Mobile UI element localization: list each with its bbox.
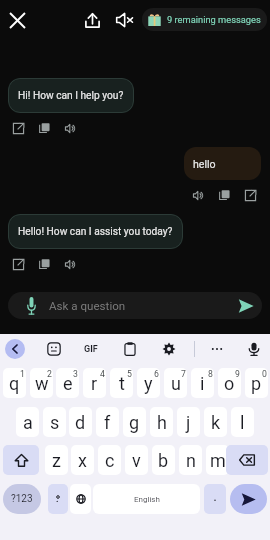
staticText: e: [63, 373, 73, 394]
staticText: a: [23, 412, 33, 433]
button[interactable]: Settings: [158, 338, 180, 360]
staticText: 6: [154, 369, 159, 379]
staticText: hello: [193, 158, 216, 170]
staticText: l: [240, 412, 245, 433]
button[interactable]: Back: [5, 339, 25, 359]
staticText: k: [211, 412, 221, 433]
button[interactable]: Read aloud: [189, 186, 207, 204]
button[interactable]: c: [98, 445, 121, 475]
staticText: s: [50, 412, 60, 433]
staticText: 2: [47, 369, 52, 379]
button[interactable]: Copy: [215, 186, 233, 204]
staticText: n: [186, 450, 196, 471]
button[interactable]: Voice: [243, 338, 265, 360]
staticText: z: [52, 450, 61, 471]
staticText: English: [134, 495, 160, 504]
button[interactable]: a: [16, 407, 39, 437]
button[interactable]: Mute: [113, 9, 135, 31]
button[interactable]: u: [164, 368, 187, 398]
button[interactable]: i: [191, 368, 214, 398]
staticText: p: [251, 373, 262, 394]
button[interactable]: Hi! How can I help you?: [8, 78, 134, 113]
button[interactable]: Open in new: [9, 119, 27, 137]
staticText: v: [132, 450, 141, 471]
staticText: GIF: [84, 344, 98, 355]
staticText: y: [144, 373, 153, 394]
staticText: o: [224, 373, 235, 394]
button[interactable]: Open in new: [241, 186, 259, 204]
button[interactable]: Emoji: [43, 338, 65, 360]
button[interactable]: Open in new: [9, 255, 27, 273]
staticText: w: [35, 373, 49, 394]
button[interactable]: Share: [81, 9, 103, 31]
staticText: Hello! How can I assist you today?: [18, 226, 173, 238]
button[interactable]: Shift: [3, 445, 39, 475]
button[interactable]: Period: [204, 484, 226, 514]
staticText: h: [157, 412, 167, 433]
staticText: b: [158, 450, 169, 471]
button[interactable]: Backspace: [226, 445, 268, 475]
button[interactable]: h: [150, 407, 173, 437]
button[interactable]: t: [110, 368, 133, 398]
staticText: 5: [127, 369, 132, 379]
staticText: f: [104, 412, 111, 433]
button[interactable]: English: [93, 484, 200, 514]
staticText: Hi! How can I help you?: [18, 90, 124, 102]
button[interactable]: d: [69, 407, 92, 437]
staticText: 0: [262, 369, 267, 379]
button[interactable]: f: [96, 407, 119, 437]
staticText: ?123: [11, 493, 33, 505]
button[interactable]: Read aloud: [61, 119, 79, 137]
button[interactable]: GIF: [81, 339, 101, 359]
button[interactable]: Language: [70, 484, 91, 514]
button[interactable]: Read aloud: [61, 255, 79, 273]
staticText: q: [9, 373, 20, 394]
button[interactable]: Send: [230, 484, 267, 514]
button[interactable]: k: [204, 407, 227, 437]
button[interactable]: hello: [184, 147, 261, 180]
staticText: 4: [100, 369, 105, 379]
staticText: c: [105, 450, 115, 471]
button[interactable]: p: [245, 368, 268, 398]
button[interactable]: e: [56, 368, 79, 398]
button[interactable]: g: [123, 407, 146, 437]
button[interactable]: Copy: [35, 119, 53, 137]
staticText: t: [119, 373, 125, 394]
button[interactable]: n: [179, 445, 202, 475]
staticText: m: [210, 450, 226, 471]
staticText: u: [171, 373, 181, 394]
button[interactable]: 9 remaining messages: [142, 8, 267, 31]
button[interactable]: r: [83, 368, 106, 398]
button[interactable]: z: [45, 445, 68, 475]
button[interactable]: l: [231, 407, 254, 437]
staticText: 9 remaining messages: [167, 14, 261, 25]
button[interactable]: j: [177, 407, 200, 437]
staticText: x: [78, 450, 87, 471]
button[interactable]: Close: [6, 9, 28, 31]
button[interactable]: y: [137, 368, 160, 398]
button[interactable]: More: [206, 338, 228, 360]
button[interactable]: q: [3, 368, 26, 398]
staticText: 7: [181, 369, 186, 379]
staticText: 8: [208, 369, 213, 379]
button[interactable]: w: [30, 368, 53, 398]
staticText: r: [91, 373, 98, 394]
staticText: j: [186, 412, 191, 433]
button[interactable]: x: [71, 445, 94, 475]
staticText: g: [129, 412, 140, 433]
button[interactable]: Clipboard: [119, 338, 141, 360]
button[interactable]: v: [125, 445, 148, 475]
button[interactable]: o: [218, 368, 241, 398]
button[interactable]: b: [152, 445, 175, 475]
staticText: 1: [20, 369, 25, 379]
staticText: 9: [235, 369, 240, 379]
button[interactable]: Emoji and comma: [48, 484, 68, 514]
button[interactable]: Hello! How can I assist you today?: [8, 214, 183, 249]
button[interactable]: s: [43, 407, 66, 437]
staticText: d: [75, 412, 86, 433]
button[interactable]: Send: [234, 294, 258, 318]
button[interactable]: Ask a question: [8, 292, 262, 319]
button[interactable]: Copy: [35, 255, 53, 273]
button[interactable]: ?123: [3, 484, 41, 514]
button[interactable]: m: [206, 445, 229, 475]
